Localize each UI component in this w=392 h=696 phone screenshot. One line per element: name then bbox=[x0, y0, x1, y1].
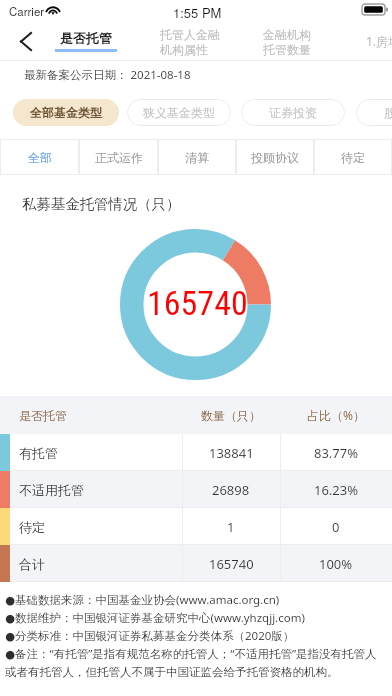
staticText: 全部基金类型 bbox=[30, 105, 102, 120]
button[interactable]: 证券投资 bbox=[241, 99, 345, 126]
staticText: 托管人金融 bbox=[160, 27, 220, 42]
staticText: 1.房地产 bbox=[366, 33, 392, 49]
button[interactable]: Back bbox=[5, 22, 47, 60]
staticText: 数量（只） bbox=[201, 408, 261, 423]
staticText: 机构属性 bbox=[160, 42, 208, 57]
staticText: 不适用托管 bbox=[19, 482, 84, 498]
button[interactable]: 投顾协议 bbox=[236, 139, 314, 175]
staticText: 1 bbox=[227, 518, 235, 536]
button[interactable]: 股权投资 bbox=[356, 99, 392, 126]
staticText: 合计 bbox=[19, 556, 45, 572]
staticText: 或者有托管人，但托管人不属于中国证监会给予托管资格的机构。 bbox=[5, 665, 339, 679]
button[interactable]: 全部 bbox=[0, 139, 79, 175]
staticText: 100% bbox=[319, 555, 353, 573]
staticText: Carrier bbox=[9, 3, 45, 19]
button[interactable]: 全部基金类型 bbox=[13, 99, 119, 126]
button[interactable]: 待定 bbox=[314, 139, 392, 175]
staticText: ●基础数据来源：中国基金业协会(www.amac.org.cn) bbox=[5, 592, 280, 608]
staticText: 证券投资 bbox=[269, 105, 317, 120]
button[interactable]: 狭义基金类型 bbox=[127, 99, 231, 126]
staticText: ●数据维护：中国银河证券基金研究中心(www.yhzqjj.com) bbox=[5, 610, 305, 626]
button[interactable]: 是否托管 bbox=[46, 22, 126, 60]
staticText: 全部 bbox=[28, 150, 52, 165]
staticText: 占比（%） bbox=[307, 407, 365, 423]
staticText: 1:55 PM bbox=[173, 3, 222, 22]
staticText: ●分类标准：中国银河证券私募基金分类体系（2020版） bbox=[5, 628, 295, 644]
staticText: 有托管 bbox=[19, 445, 58, 461]
button[interactable]: 待定 bbox=[0, 508, 392, 545]
staticText: 清算 bbox=[185, 150, 209, 165]
staticText: 股权投资 bbox=[384, 105, 392, 120]
staticText: 狭义基金类型 bbox=[143, 105, 215, 120]
staticText: 托管数量 bbox=[263, 42, 311, 57]
button[interactable]: 合计 bbox=[0, 545, 392, 582]
staticText: 金融机构 bbox=[263, 27, 311, 42]
staticText: 待定 bbox=[341, 150, 365, 165]
staticText: 正式运作 bbox=[95, 150, 143, 165]
staticText: ●备注：“有托管”是指有规范名称的托管人；“不适用托管”是指没有托管人 bbox=[5, 646, 377, 662]
staticText: 待定 bbox=[19, 519, 45, 535]
button[interactable]: 托管人金融 bbox=[160, 27, 220, 57]
staticText: 165740 bbox=[209, 555, 254, 573]
staticText: 是否托管 bbox=[60, 30, 112, 46]
staticText: 最新备案公示日期： 2021-08-18 bbox=[24, 67, 191, 83]
button[interactable]: 1.房地产 bbox=[366, 22, 392, 60]
staticText: 83.77% bbox=[314, 444, 359, 462]
staticText: 0 bbox=[332, 518, 340, 536]
button[interactable]: 有托管 bbox=[0, 434, 392, 471]
button[interactable]: 金融机构 bbox=[263, 27, 311, 57]
staticText: 138841 bbox=[209, 444, 254, 462]
staticText: 16.23% bbox=[314, 481, 359, 499]
staticText: 165740 bbox=[147, 283, 248, 323]
staticText: 26898 bbox=[212, 481, 250, 499]
staticText: 投顾协议 bbox=[251, 150, 299, 165]
button[interactable]: 不适用托管 bbox=[0, 471, 392, 508]
staticText: 是否托管 bbox=[19, 408, 67, 423]
button[interactable]: 正式运作 bbox=[79, 139, 158, 175]
button[interactable]: 清算 bbox=[158, 139, 236, 175]
staticText: 私募基金托管情况（只） bbox=[22, 195, 181, 213]
